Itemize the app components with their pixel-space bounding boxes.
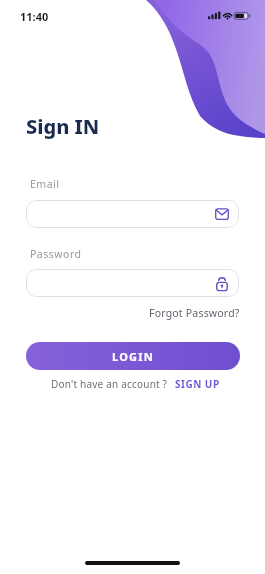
staticText: Don't have an account ? [51, 377, 168, 391]
staticText: Password [30, 247, 82, 261]
button[interactable]: LOGIN [26, 342, 240, 370]
staticText: LOGIN [112, 349, 154, 364]
button[interactable]: Forgot Password? [26, 306, 240, 320]
staticText: Forgot Password? [149, 306, 240, 320]
staticText: 11:40 [20, 9, 49, 24]
button[interactable]: SIGN UP [175, 377, 220, 391]
staticText: Email [30, 177, 60, 191]
button[interactable] [26, 269, 239, 297]
button[interactable] [26, 200, 239, 228]
staticText: Sign IN [26, 113, 100, 140]
